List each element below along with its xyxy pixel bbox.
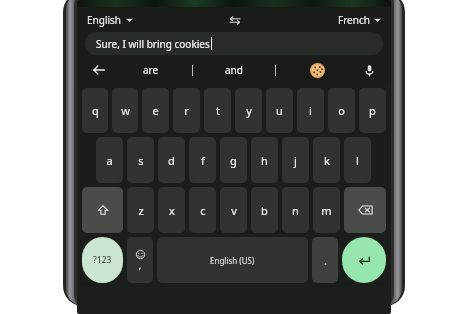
staticText: n xyxy=(292,203,299,218)
button[interactable]: and xyxy=(193,55,275,85)
staticText: i xyxy=(309,103,312,118)
staticText: Sure, I will bring cookies xyxy=(96,37,210,51)
button[interactable]: o xyxy=(328,88,355,133)
button[interactable]: v xyxy=(220,187,247,233)
staticText: s xyxy=(138,153,144,168)
button[interactable]: Back xyxy=(88,59,110,81)
staticText: o xyxy=(338,103,345,118)
button[interactable]: y xyxy=(235,88,262,133)
button[interactable]: s xyxy=(127,137,154,183)
button[interactable]: Shift xyxy=(82,187,123,233)
button[interactable]: b xyxy=(251,187,278,233)
button[interactable]: n xyxy=(282,187,309,233)
button[interactable]: t xyxy=(204,88,231,133)
staticText: b xyxy=(261,203,268,218)
staticText: y xyxy=(246,103,252,118)
button[interactable]: l xyxy=(344,137,371,183)
button[interactable]: Swap languages xyxy=(224,9,246,31)
button[interactable]: ?123 xyxy=(82,237,123,283)
staticText: a xyxy=(106,153,113,168)
button[interactable]: u xyxy=(266,88,293,133)
button[interactable]: k xyxy=(313,137,340,183)
staticText: French xyxy=(338,13,370,27)
button[interactable]: Enter xyxy=(342,237,386,283)
staticText: d xyxy=(168,153,175,168)
button[interactable]: are xyxy=(110,55,192,85)
button[interactable]: x xyxy=(158,187,185,233)
staticText: r xyxy=(184,103,189,118)
button[interactable]: m xyxy=(313,187,340,233)
staticText: w xyxy=(121,103,130,118)
button[interactable]: r xyxy=(173,88,200,133)
button[interactable]: i xyxy=(297,88,324,133)
staticText: u xyxy=(276,103,283,118)
staticText: , xyxy=(139,260,142,271)
button[interactable]: w xyxy=(112,88,138,133)
button[interactable]: e xyxy=(142,88,169,133)
button[interactable]: . xyxy=(312,237,338,283)
button[interactable]: Cookie emoji xyxy=(276,55,358,85)
button[interactable]: j xyxy=(282,137,309,183)
staticText: j xyxy=(294,153,297,168)
staticText: f xyxy=(201,153,205,168)
button[interactable]: d xyxy=(158,137,185,183)
staticText: c xyxy=(200,203,206,218)
staticText: ?123 xyxy=(93,254,112,266)
staticText: g xyxy=(230,153,237,168)
button[interactable]: Sure, I will bring cookies xyxy=(85,32,383,55)
staticText: l xyxy=(356,153,359,168)
staticText: p xyxy=(369,103,376,118)
staticText: m xyxy=(321,203,332,218)
button[interactable]: p xyxy=(359,88,386,133)
button[interactable]: French xyxy=(336,11,383,29)
button[interactable]: g xyxy=(220,137,247,183)
staticText: English (US) xyxy=(210,255,255,266)
staticText: and xyxy=(225,63,243,77)
button[interactable]: a xyxy=(96,137,123,183)
staticText: . xyxy=(324,253,327,268)
button[interactable]: English (US) xyxy=(157,237,308,283)
staticText: e xyxy=(152,103,159,118)
button[interactable]: Backspace xyxy=(344,187,386,233)
button[interactable]: f xyxy=(189,137,216,183)
button[interactable]: Voice input xyxy=(358,59,380,81)
staticText: k xyxy=(324,153,330,168)
button[interactable]: q xyxy=(82,88,108,133)
staticText: are xyxy=(143,63,159,77)
staticText: x xyxy=(169,203,175,218)
button[interactable]: z xyxy=(127,187,154,233)
staticText: English xyxy=(87,13,122,27)
staticText: z xyxy=(138,203,144,218)
button[interactable]: h xyxy=(251,137,278,183)
button[interactable]: Emoji xyxy=(127,237,153,283)
staticText: t xyxy=(216,103,220,118)
button[interactable]: c xyxy=(189,187,216,233)
staticText: h xyxy=(261,153,268,168)
staticText: q xyxy=(92,103,99,118)
staticText: v xyxy=(231,203,237,218)
button[interactable]: English xyxy=(85,11,135,29)
